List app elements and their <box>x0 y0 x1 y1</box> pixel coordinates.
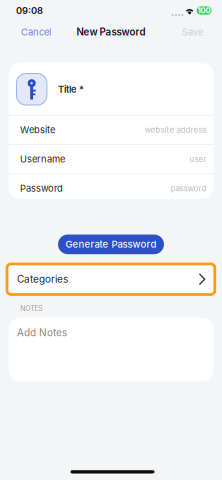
button[interactable]: Categories <box>7 264 215 294</box>
staticText: 100 <box>198 6 211 15</box>
staticText: Username <box>20 153 65 165</box>
staticText: Title * <box>58 84 84 95</box>
staticText: NOTES <box>20 304 42 313</box>
staticText: Categories <box>17 273 68 285</box>
staticText: Website <box>20 124 55 136</box>
staticText: New Password <box>76 26 145 38</box>
button[interactable]: Cancel <box>16 21 56 43</box>
staticText: Generate Password <box>65 238 156 250</box>
staticText: website address <box>145 125 207 135</box>
staticText: user <box>190 154 207 164</box>
button[interactable]: Generate Password <box>58 234 164 254</box>
staticText: 09:08 <box>16 5 43 16</box>
button[interactable]: Save <box>177 21 208 43</box>
staticText: password <box>171 183 207 193</box>
staticText: Save <box>182 26 203 38</box>
staticText: Add Notes <box>17 326 67 339</box>
staticText: Password <box>20 183 63 194</box>
staticText: Cancel <box>21 26 51 38</box>
